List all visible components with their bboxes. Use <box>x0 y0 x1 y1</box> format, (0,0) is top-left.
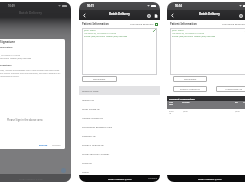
button[interactable]: Back <box>80 11 88 19</box>
staticText: $2.00 <box>235 110 240 112</box>
button[interactable] <box>155 23 158 26</box>
staticText: Please Sign in the above area <box>7 118 43 122</box>
staticText: 1234567890123 <box>225 88 243 91</box>
staticText: Self/Patient <box>93 78 106 81</box>
staticText: Payment <box>182 101 190 103</box>
button[interactable]: Back <box>168 11 176 19</box>
staticText: Counseling Required? <box>130 23 154 26</box>
staticText: $2.00 <box>183 110 188 112</box>
staticText: State Issued ID <box>82 107 100 110</box>
button[interactable]: Self/Patient <box>173 76 207 82</box>
button[interactable]: 1234567890123 <box>216 86 245 92</box>
button[interactable]: Passport ID <box>79 131 160 140</box>
staticText: Patient Signature <box>0 40 16 44</box>
staticText: Counseling Required? <box>222 23 245 26</box>
button[interactable]: Permanent Resident Card <box>79 122 160 131</box>
staticText: Phone: (555) 555-5555 Mobile: (555) 555-… <box>172 35 216 38</box>
button[interactable]: Other <box>79 167 160 176</box>
staticText: 10:09 <box>8 4 15 8</box>
staticText: CASH 10 <box>169 110 174 114</box>
staticText: Payment Information <box>169 97 195 100</box>
button[interactable]: Info <box>145 12 152 19</box>
button[interactable]: Add <box>61 168 66 173</box>
staticText: Batch Delivery <box>19 11 43 15</box>
staticText: Military ID <box>82 98 95 101</box>
button[interactable]: Document <box>152 12 159 19</box>
staticText: Unique System ID <box>82 116 103 119</box>
staticText: Phone: (555) 555-5555 Mobile: (555) 555-… <box>0 57 32 60</box>
staticText: Patient Information <box>170 22 197 26</box>
staticText: Total Amount: $2.00 <box>198 177 222 180</box>
staticText: Tribal ID <box>82 161 92 164</box>
button[interactable]: Driver's License ID <box>173 86 207 92</box>
staticText: Patient Information <box>82 22 109 26</box>
staticText: Driver's License ID <box>82 143 104 146</box>
button[interactable]: Driver's License ID <box>79 140 160 149</box>
staticText: Terms and Conditions <box>0 64 12 67</box>
staticText: Other <box>82 170 89 173</box>
staticText: Total Amount: $2.00 <box>19 177 43 180</box>
button[interactable]: Unique System ID <box>79 113 160 122</box>
staticText: REFUSE <box>39 144 48 147</box>
button[interactable]: Info <box>237 12 244 19</box>
staticText: Social Security Number <box>82 152 110 155</box>
button[interactable]: Military ID <box>79 95 160 104</box>
staticText: Phone: (555) 555-5555 Mobile: (555) 555-… <box>84 35 128 38</box>
staticText: 10:14 <box>175 4 182 8</box>
button[interactable]: REFUSE <box>39 144 48 147</box>
staticText: Permanent Resident Card <box>82 125 113 128</box>
staticText: ACCEPT <box>52 144 61 147</box>
staticText: Type Date <box>169 101 173 105</box>
staticText: Customer information <box>0 46 13 49</box>
staticText: 10:11 <box>87 4 94 8</box>
staticText: Select ID Type <box>82 89 99 92</box>
staticText: Complete <box>148 177 158 180</box>
button[interactable]: Social Security Number <box>79 149 160 158</box>
button[interactable]: Select ID Type <box>79 86 160 95</box>
staticText: 123 MAIN ST, ANYTOWN ST 12345 <box>0 54 20 57</box>
staticText: Self/Patient <box>184 78 197 81</box>
button[interactable]: Self/Patient <box>82 76 117 82</box>
button[interactable]: ACCEPT <box>52 144 61 147</box>
staticText: JOHN SMITH <box>172 29 184 32</box>
staticText: Amount <box>243 101 245 103</box>
staticText: 123 MAIN ST, ANYTOWN ST 12345 <box>84 32 116 35</box>
button[interactable]: Tribal ID <box>79 158 160 167</box>
staticText: Batch Delivery <box>199 12 220 16</box>
staticText: Bill <box>235 101 238 103</box>
staticText: JOHN SMITH <box>84 29 96 32</box>
button[interactable]: State Issued ID <box>79 104 160 113</box>
staticText: Batch Delivery <box>109 12 130 16</box>
staticText: Driver's License ID <box>180 88 200 91</box>
staticText: 123 MAIN ST, ANYTOWN ST 12345 <box>172 32 204 35</box>
staticText: Total Amount: $2.00 <box>108 177 132 180</box>
staticText: Passport ID <box>82 134 96 137</box>
staticText: By signing below, I hereby acknowledge t… <box>0 69 61 78</box>
